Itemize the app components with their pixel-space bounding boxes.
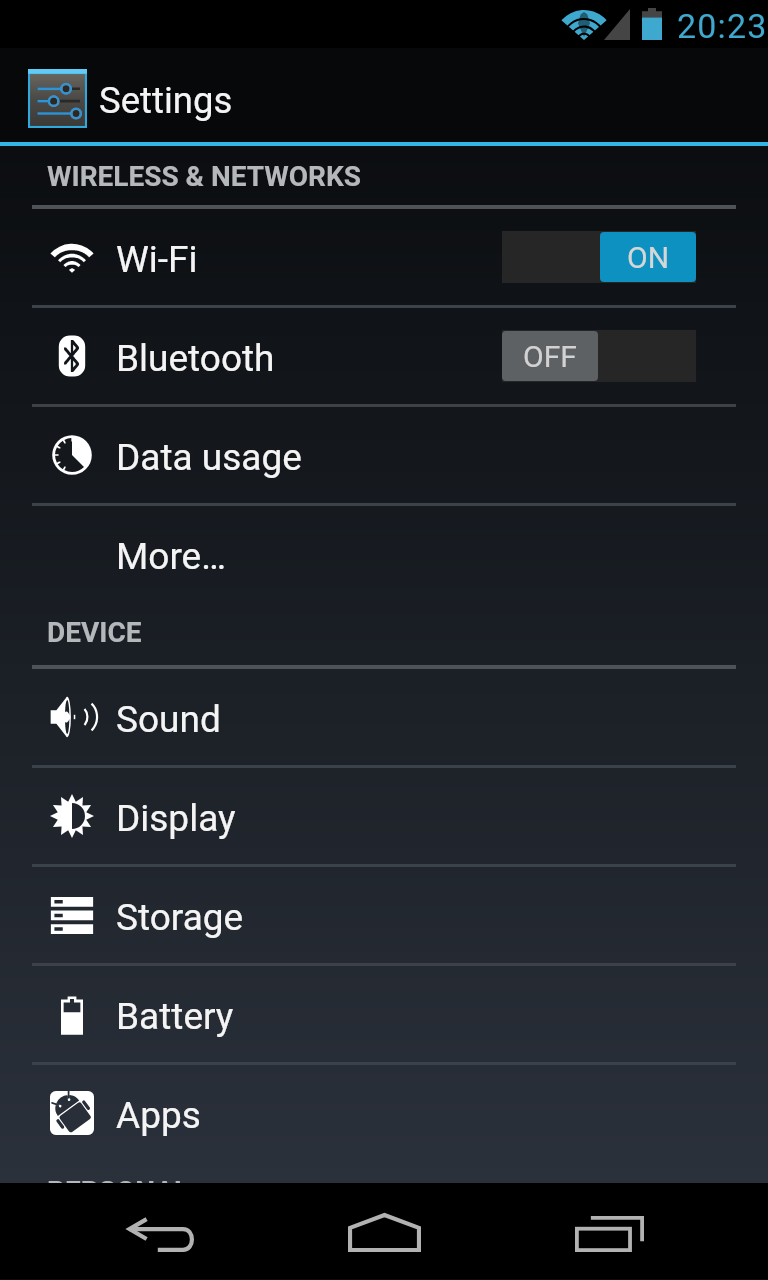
- staticText: 20:23: [677, 6, 768, 46]
- button[interactable]: Bluetooth: [0, 308, 768, 404]
- staticText: Data usage: [116, 436, 302, 479]
- button[interactable]: ON: [502, 231, 696, 283]
- staticText: Display: [116, 797, 236, 840]
- button[interactable]: Battery: [0, 966, 768, 1062]
- button[interactable]: Settings: [0, 48, 768, 142]
- staticText: Sound: [116, 698, 221, 741]
- staticText: OFF: [523, 339, 577, 374]
- button[interactable]: Display: [0, 768, 768, 864]
- button[interactable]: OFF: [502, 330, 696, 382]
- staticText: Wi-Fi: [116, 238, 198, 281]
- button[interactable]: Storage: [0, 867, 768, 963]
- button[interactable]: More…: [0, 506, 768, 602]
- staticText: Apps: [116, 1094, 201, 1137]
- staticText: PERSONAL: [47, 1175, 190, 1183]
- button[interactable]: Back: [113, 1204, 211, 1264]
- staticText: ON: [627, 240, 670, 275]
- staticText: DEVICE: [47, 616, 142, 649]
- button[interactable]: Wi-Fi: [0, 209, 768, 305]
- staticText: WIRELESS & NETWORKS: [47, 160, 361, 193]
- staticText: More…: [116, 535, 226, 578]
- staticText: Storage: [116, 896, 244, 939]
- staticText: Bluetooth: [116, 337, 275, 380]
- staticText: Battery: [116, 995, 234, 1038]
- button[interactable]: Apps: [0, 1065, 768, 1161]
- button[interactable]: Recent apps: [567, 1204, 651, 1264]
- button[interactable]: Sound: [0, 669, 768, 765]
- button[interactable]: Data usage: [0, 407, 768, 503]
- button[interactable]: Home: [340, 1202, 428, 1262]
- staticText: Settings: [99, 79, 233, 122]
